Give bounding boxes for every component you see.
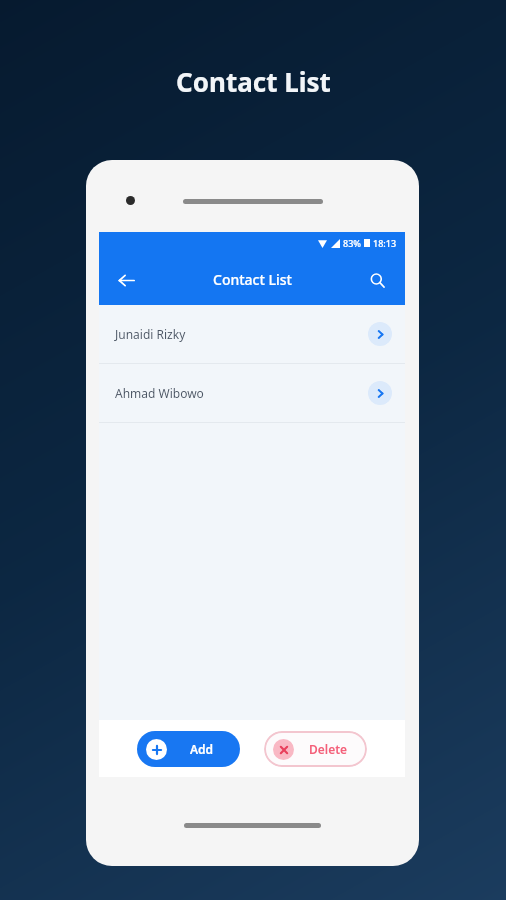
staticText: 83% [343, 237, 361, 249]
button[interactable]: Ahmad Wibowo [99, 364, 405, 422]
staticText: Junaidi Rizky [115, 326, 186, 342]
button[interactable]: Junaidi Rizky [99, 305, 405, 363]
staticText: Contact List [213, 270, 292, 289]
button[interactable]: Back [107, 261, 145, 299]
staticText: 18:13 [373, 237, 397, 249]
button[interactable]: Add [137, 731, 240, 767]
staticText: Delete [309, 741, 348, 757]
button[interactable]: Search [359, 262, 395, 298]
staticText: Ahmad Wibowo [115, 385, 204, 401]
staticText: Contact List [176, 64, 331, 99]
staticText: Add [190, 741, 214, 757]
button[interactable]: Delete [264, 731, 367, 767]
